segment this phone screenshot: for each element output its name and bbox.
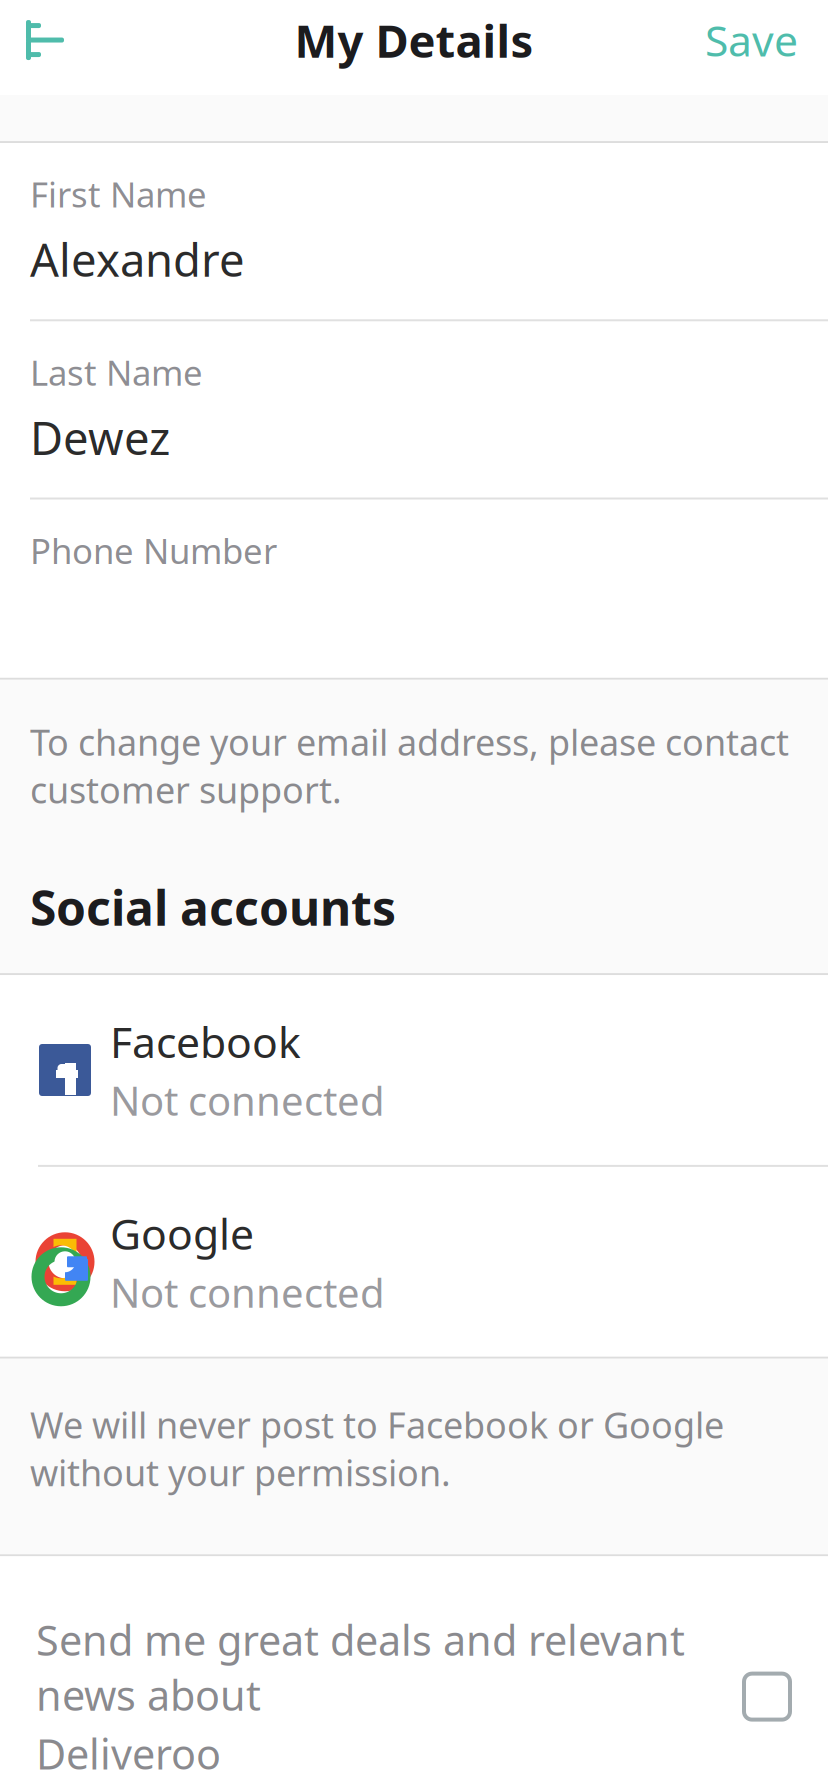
staticText: First Name	[30, 171, 207, 217]
staticText: Save	[705, 12, 798, 68]
staticText: My Details	[294, 10, 533, 70]
staticText: Send me great deals and relevant news ab…	[36, 1612, 685, 1722]
staticText: Last Name	[30, 349, 203, 395]
button[interactable]: Phone Number	[0, 499, 828, 678]
button[interactable]: Facebook	[0, 975, 828, 1165]
staticText: Dewez	[30, 407, 170, 467]
button[interactable]: Last Name	[0, 321, 828, 499]
staticText: To change your email address, please con…	[30, 718, 789, 813]
button[interactable]: Save	[675, 0, 828, 95]
staticText: Deliveroo	[36, 1726, 221, 1781]
staticText: Not connected	[110, 1266, 385, 1319]
button[interactable]: Send me great deals and relevant news ab…	[0, 1556, 828, 1792]
button[interactable]: Back	[0, 0, 90, 95]
staticText: Not connected	[110, 1074, 385, 1127]
staticText: We will never post to Facebook or Google…	[30, 1401, 724, 1496]
staticText: Facebook	[110, 1013, 301, 1070]
staticText: Phone Number	[30, 527, 277, 573]
staticText: Google	[110, 1205, 254, 1262]
staticText: Alexandre	[30, 229, 245, 289]
button[interactable]: Google	[0, 1167, 828, 1357]
staticText: Social accounts	[30, 875, 396, 939]
button[interactable]: First Name	[0, 143, 828, 321]
